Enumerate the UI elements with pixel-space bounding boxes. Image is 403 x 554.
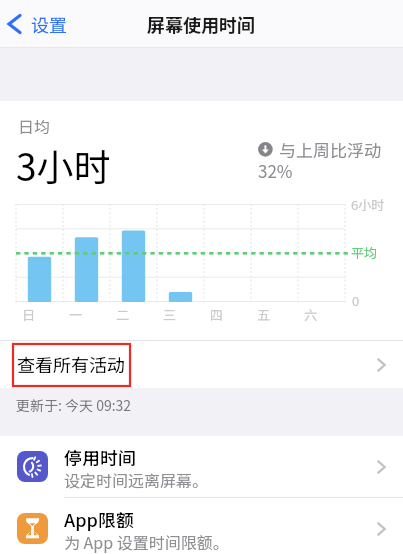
staticText: 三 xyxy=(163,305,177,324)
button[interactable]: App 限额 xyxy=(0,498,403,554)
staticText: 屏幕使用时间 xyxy=(147,11,255,37)
staticText: 日 xyxy=(22,305,36,324)
button[interactable]: 查看所有活动 xyxy=(0,341,403,388)
staticText: 为 App 设置时间限额。 xyxy=(64,530,229,553)
staticText: 二 xyxy=(116,305,130,324)
other: 停用时间 xyxy=(17,451,48,482)
staticText: 0 xyxy=(352,291,360,310)
staticText: 设定时间远离屏幕。 xyxy=(64,468,209,491)
staticText: App限额 xyxy=(64,506,134,532)
staticText: 平均 xyxy=(351,243,378,262)
staticText: 32% xyxy=(258,158,293,183)
staticText: 一 xyxy=(69,305,83,324)
other: App 限额 xyxy=(17,513,48,544)
button[interactable]: 返回设置 xyxy=(5,11,67,37)
staticText: 更新于: 今天 09:32 xyxy=(16,395,132,415)
staticText: 与上周比浮动 xyxy=(279,137,381,162)
staticText: 3小时 xyxy=(16,138,111,192)
staticText: 四 xyxy=(210,305,224,324)
staticText: 日均 xyxy=(18,114,51,137)
staticText: 6小时 xyxy=(351,195,385,214)
staticText: 设置 xyxy=(31,11,67,37)
other: 返回设置 xyxy=(5,12,21,36)
staticText: 六 xyxy=(304,305,318,324)
button[interactable]: 停用时间 xyxy=(0,436,403,498)
staticText: 查看所有活动 xyxy=(17,351,125,377)
staticText: 五 xyxy=(257,305,271,324)
staticText: 停用时间 xyxy=(64,444,136,470)
